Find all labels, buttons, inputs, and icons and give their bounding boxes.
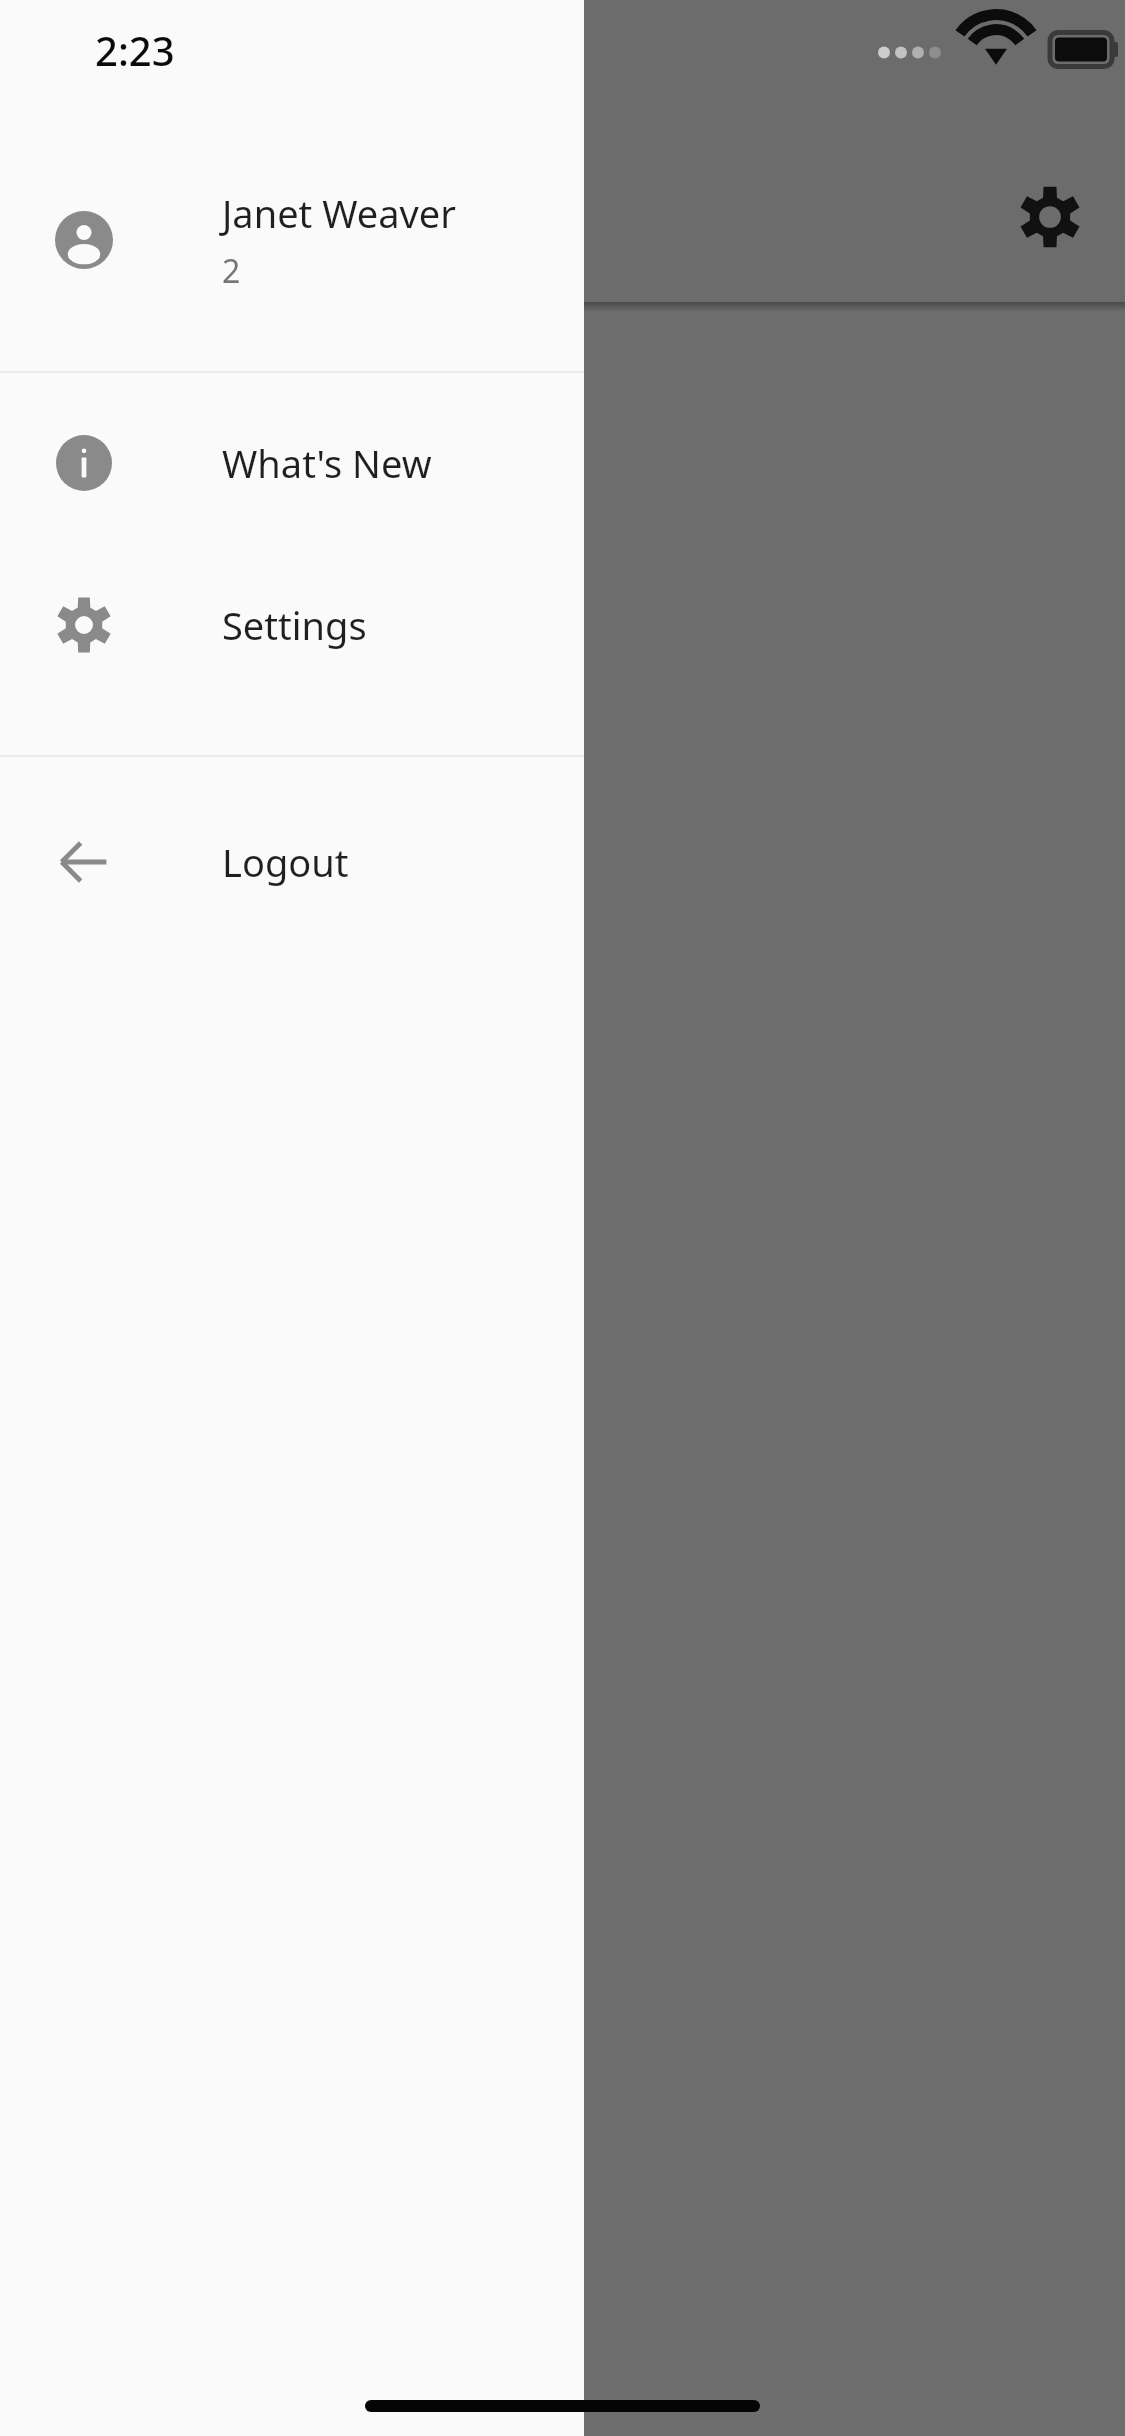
- button[interactable]: What's New: [0, 393, 584, 533]
- button[interactable]: Janet Weaver: [0, 170, 584, 310]
- staticText: Logout: [222, 836, 349, 888]
- staticText: 2: [222, 249, 241, 293]
- button[interactable]: Logout: [0, 792, 584, 932]
- button[interactable]: Settings: [998, 165, 1102, 269]
- staticText: 2:23: [95, 23, 175, 77]
- staticText: What's New: [222, 437, 432, 489]
- staticText: Settings: [222, 599, 367, 651]
- button[interactable]: [584, 0, 1125, 2436]
- staticText: Janet Weaver: [222, 187, 456, 239]
- button[interactable]: Settings: [0, 555, 584, 695]
